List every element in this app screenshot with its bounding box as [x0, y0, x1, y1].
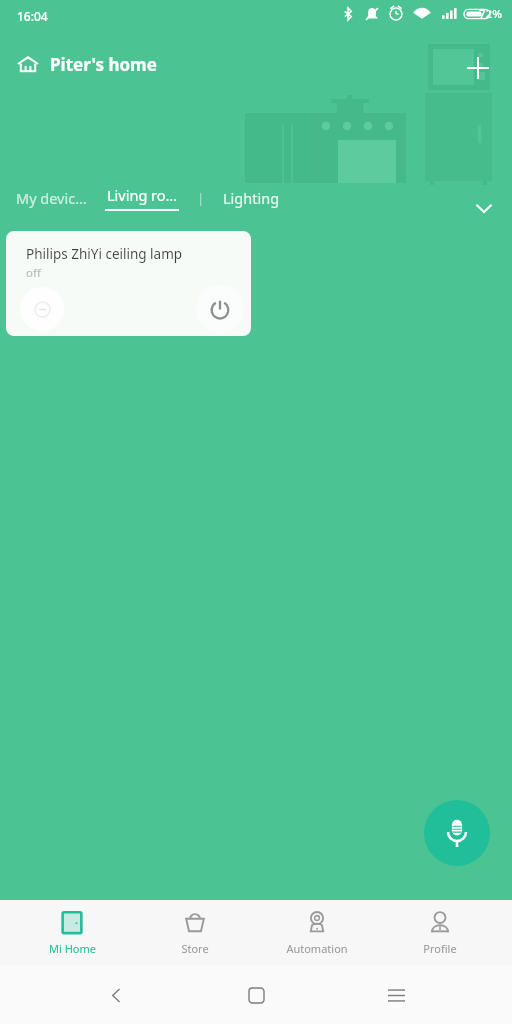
button[interactable]: Store [145, 904, 245, 962]
staticText: Living ro… [107, 185, 178, 205]
button[interactable]: Expand rooms [464, 188, 504, 228]
button[interactable]: Automation [267, 904, 367, 962]
staticText: Profile [423, 941, 457, 956]
staticText: Automation [286, 941, 348, 956]
staticText: Piter's home [50, 53, 157, 76]
button[interactable]: Voice assistant [424, 800, 490, 866]
button[interactable]: Lighting [223, 188, 280, 208]
button[interactable]: Profile [390, 904, 490, 962]
button[interactable]: Philips ZhiYi ceiling lamp [6, 231, 251, 336]
staticText: Store [181, 941, 209, 956]
button[interactable]: My devic… [16, 188, 87, 208]
button[interactable]: Mi Home [22, 904, 122, 962]
button[interactable]: Living ro… [105, 185, 179, 211]
button[interactable]: Brightness [20, 287, 64, 331]
staticText: Mi Home [49, 941, 96, 956]
button[interactable]: Home [232, 971, 280, 1019]
button[interactable]: Power toggle [196, 285, 244, 333]
button[interactable]: Back [92, 971, 140, 1019]
button[interactable]: Add device [454, 44, 502, 92]
staticText: Philips ZhiYi ceiling lamp [26, 245, 183, 263]
staticText: off [26, 265, 41, 281]
staticText: | [197, 189, 205, 207]
button[interactable]: Piter's home [16, 52, 157, 76]
staticText: My devic… [16, 188, 87, 208]
staticText: 16:04 [17, 8, 48, 24]
button[interactable]: Recent apps [372, 971, 420, 1019]
staticText: 72% [479, 6, 502, 22]
staticText: Lighting [223, 188, 280, 208]
